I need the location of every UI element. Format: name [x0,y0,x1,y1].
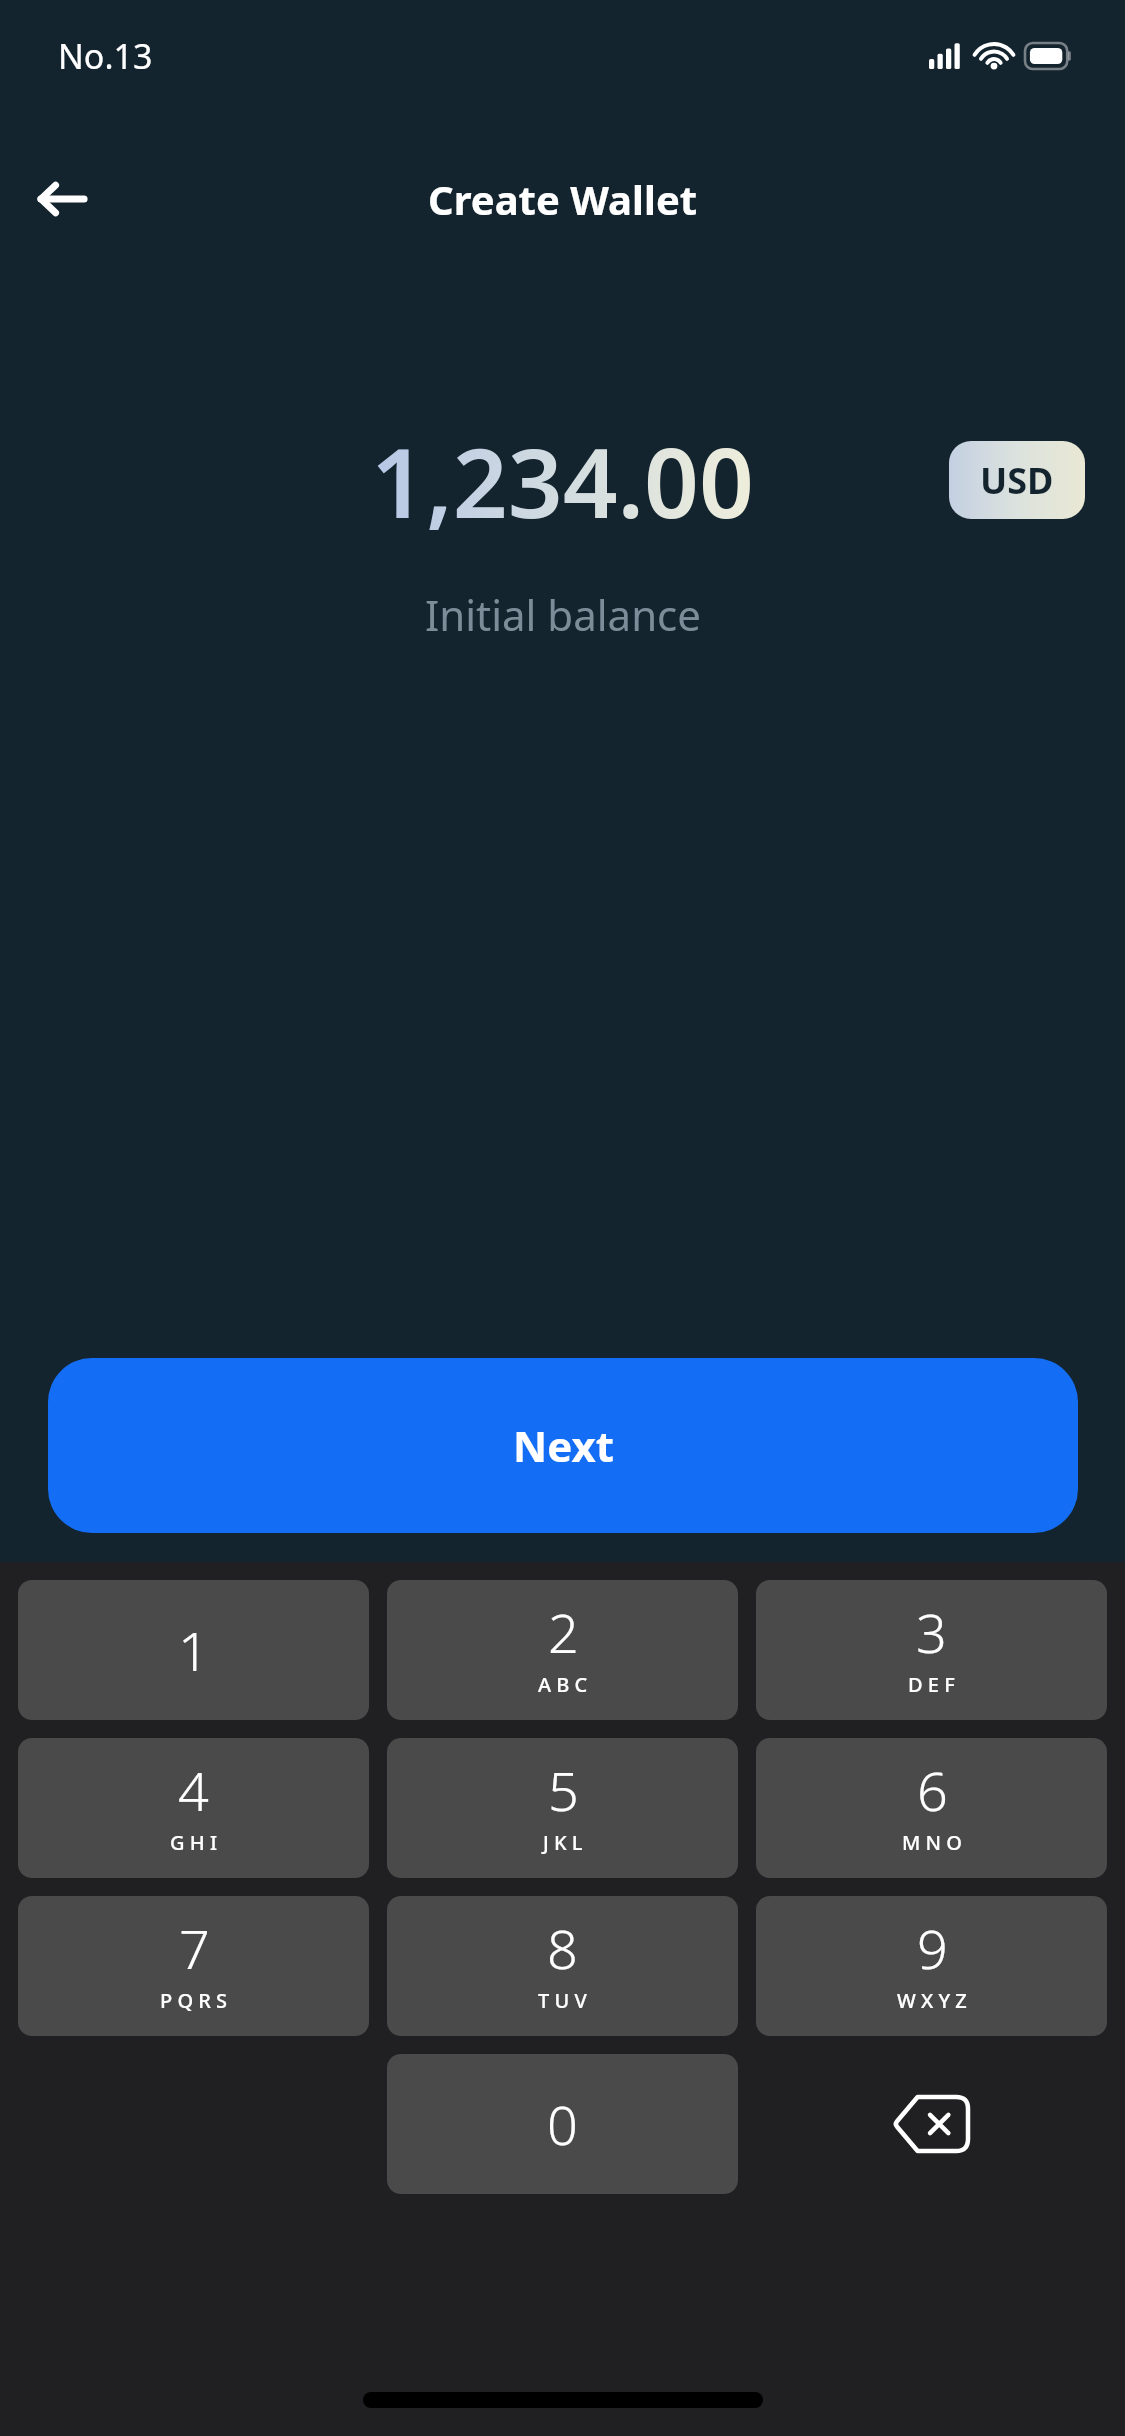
staticText: G H I [170,1829,217,1856]
button[interactable]: 4 [18,1738,369,1878]
staticText: 2 [548,1595,579,1669]
staticText: W X Y Z [897,1987,967,2014]
button[interactable]: 6 [756,1738,1107,1878]
staticText: Create Wallet [428,172,698,226]
staticText: 4 [178,1753,209,1827]
staticText: 1,234.00 [371,415,754,545]
staticText: 5 [548,1753,579,1827]
button[interactable]: 0 [387,2054,738,2194]
staticText: A B C [538,1671,588,1698]
button[interactable]: USD [949,441,1085,519]
staticText: 6 [917,1753,948,1827]
staticText: J K L [543,1829,583,1856]
button[interactable]: 5 [387,1738,738,1878]
staticText: 9 [917,1911,948,1985]
staticText: 3 [916,1595,947,1669]
staticText: T U V [538,1987,587,2014]
button[interactable]: 1 [18,1580,369,1720]
staticText: D E F [908,1671,955,1698]
staticText: Initial balance [425,586,701,643]
button[interactable]: 8 [387,1896,738,2036]
staticText: No.13 [58,33,153,79]
staticText: 8 [547,1911,578,1985]
button[interactable]: Backspace [756,2054,1107,2194]
staticText: USD [980,456,1054,505]
button[interactable]: 7 [18,1896,369,2036]
button[interactable]: Back [20,157,104,241]
staticText: 1 [178,1613,209,1687]
staticText: M N O [902,1829,962,1856]
button[interactable]: Next [48,1358,1078,1533]
button[interactable]: 2 [387,1580,738,1720]
staticText: Next [513,1417,614,1474]
staticText: 7 [179,1911,210,1985]
button[interactable]: 3 [756,1580,1107,1720]
button[interactable]: 9 [756,1896,1107,2036]
staticText: P Q R S [160,1987,228,2014]
staticText: 0 [547,2087,578,2161]
